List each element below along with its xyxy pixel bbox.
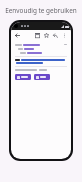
staticText: Eenvoudig te gebruiken (5, 6, 77, 15)
button[interactable]: Eenvoudig te gebruiken (0, 6, 82, 15)
button[interactable]: Archive (34, 32, 41, 39)
button[interactable]: More options (61, 32, 68, 39)
button[interactable]: Primary action (15, 74, 31, 80)
button[interactable]: Reply (52, 32, 59, 39)
button[interactable]: Secondary action (34, 74, 50, 80)
button[interactable]: Back (14, 32, 21, 39)
button[interactable]: Star (43, 32, 50, 39)
